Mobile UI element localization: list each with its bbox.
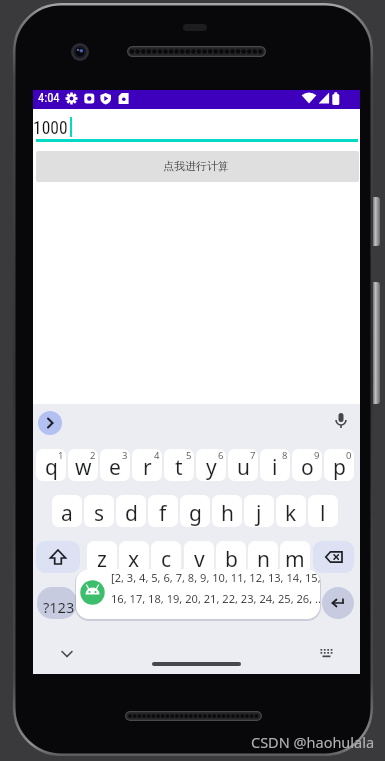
button[interactable]: q <box>36 449 66 481</box>
button[interactable]: i <box>260 449 290 481</box>
staticText: m <box>285 545 305 573</box>
button[interactable]: s <box>84 495 114 527</box>
staticText: [2, 3, 4, 5, 6, 7, 8, 9, 10, 11, 12, 13,… <box>111 570 320 585</box>
staticText: p <box>333 453 346 481</box>
button[interactable]: n <box>248 541 278 573</box>
staticText: n <box>257 545 270 573</box>
staticText: i <box>272 453 278 481</box>
staticText: q <box>45 453 58 481</box>
staticText: o <box>301 453 314 481</box>
staticText: s <box>94 499 105 527</box>
staticText: h <box>221 499 234 527</box>
button[interactable]: f <box>148 495 178 527</box>
button[interactable]: 点我进行计算 <box>36 151 359 182</box>
staticText: e <box>109 453 121 481</box>
staticText: a <box>61 499 73 527</box>
staticText: z <box>97 545 107 573</box>
button[interactable]: b <box>216 541 246 573</box>
staticText: 8 <box>282 449 288 462</box>
staticText: 3 <box>122 449 128 462</box>
button[interactable]: o <box>292 449 322 481</box>
button[interactable]: w <box>68 449 98 481</box>
staticText: y <box>206 453 217 481</box>
button[interactable]: t <box>164 449 194 481</box>
button[interactable] <box>269 587 296 619</box>
staticText: 4 <box>154 449 160 462</box>
button[interactable]: x <box>119 541 149 573</box>
staticText: x <box>128 545 140 573</box>
staticText: ?123 <box>43 597 75 617</box>
button[interactable] <box>38 411 62 435</box>
staticText: 16, 17, 18, 19, 20, 21, 22, 23, 24, 25, … <box>111 591 320 606</box>
button[interactable]: z <box>87 541 117 573</box>
button[interactable]: c <box>151 541 181 573</box>
button[interactable]: e <box>100 449 130 481</box>
button[interactable]: v <box>184 541 214 573</box>
button[interactable] <box>319 648 334 659</box>
staticText: 2 <box>90 449 96 462</box>
staticText: j <box>256 499 262 527</box>
staticText: b <box>225 545 238 573</box>
staticText: 点我进行计算 <box>163 159 229 173</box>
button[interactable]: a <box>52 495 82 527</box>
button[interactable]: ?123 <box>37 587 77 619</box>
button[interactable]: [2, 3, 4, 5, 6, 7, 8, 9, 10, 11, 12, 13,… <box>76 569 320 619</box>
button[interactable] <box>82 587 109 619</box>
button[interactable]: m <box>280 541 310 573</box>
staticText: 4:04 <box>38 90 60 105</box>
button[interactable]: r <box>132 449 162 481</box>
button[interactable]: d <box>116 495 146 527</box>
button[interactable] <box>36 541 80 573</box>
staticText: 9 <box>314 449 320 462</box>
button[interactable] <box>333 413 349 433</box>
button[interactable]: j <box>244 495 274 527</box>
staticText: w <box>75 453 92 481</box>
staticText: 1000 <box>33 118 68 139</box>
staticText: u <box>237 453 250 481</box>
staticText: t <box>175 453 183 481</box>
button[interactable]: k <box>276 495 306 527</box>
button[interactable] <box>313 541 354 573</box>
staticText: 0 <box>346 449 352 462</box>
staticText: g <box>189 499 202 527</box>
staticText: 5 <box>186 449 192 462</box>
button[interactable]: g <box>180 495 210 527</box>
staticText: CSDN @haohulala <box>251 732 375 752</box>
staticText: 1 <box>58 449 64 462</box>
button[interactable] <box>112 587 265 619</box>
staticText: d <box>125 499 138 527</box>
button[interactable] <box>322 587 354 619</box>
staticText: c <box>161 545 172 573</box>
staticText: l <box>320 499 326 527</box>
staticText: r <box>143 453 152 481</box>
staticText: f <box>159 499 167 527</box>
staticText: 6 <box>218 449 224 462</box>
staticText: v <box>194 545 205 573</box>
button[interactable]: p <box>324 449 354 481</box>
staticText: k <box>285 499 297 527</box>
button[interactable]: u <box>228 449 258 481</box>
button[interactable]: l <box>308 495 338 527</box>
button[interactable] <box>152 662 241 666</box>
button[interactable]: y <box>196 449 226 481</box>
staticText: 7 <box>250 449 256 462</box>
button[interactable]: h <box>212 495 242 527</box>
